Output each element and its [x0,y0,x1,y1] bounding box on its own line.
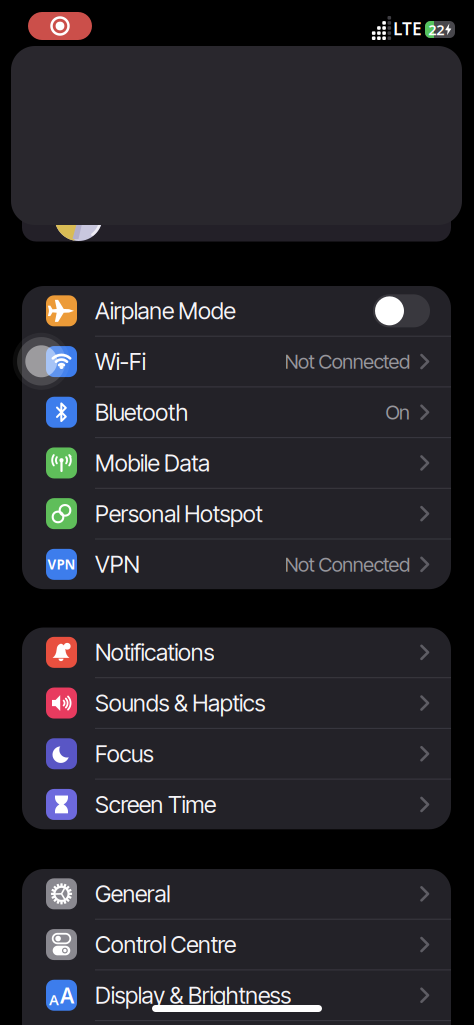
button[interactable]: Notifications [22,627,451,677]
staticText: Screen Time [95,790,216,818]
button[interactable]: Mobile Data [22,438,451,488]
staticText: A [49,990,59,1009]
staticText: General [95,880,170,908]
button[interactable]: Bluetooth [22,387,451,437]
button[interactable]: Airplane Mode [373,294,430,327]
staticText: 22 [428,20,444,39]
staticText: Personal Hotspot [95,499,262,528]
staticText: Not Connected [285,349,410,374]
staticText: LTE [393,17,422,40]
staticText: Wi-Fi [95,347,146,376]
button[interactable]: Focus [22,729,451,779]
button[interactable]: Sounds & Haptics [22,678,451,728]
staticText: A [60,981,74,1009]
button[interactable]: VPN [22,539,451,589]
button[interactable]: Stop screen recording [28,12,92,40]
staticText: Display & Brightness [95,981,291,1009]
button[interactable]: Personal Hotspot [22,489,451,538]
staticText: Focus [95,740,154,768]
button[interactable]: Wi-Fi [22,337,451,386]
staticText: Airplane Mode [95,297,235,325]
button[interactable]: Airplane Mode [22,286,451,336]
staticText: Mobile Data [95,449,210,477]
button[interactable]: A [22,970,451,1020]
staticText: Notifications [95,638,214,666]
staticText: Not Connected [285,552,410,576]
staticText: On [385,400,410,424]
staticText: VPN [95,550,139,578]
button[interactable]: Control Centre [22,920,451,969]
button[interactable]: General [22,869,451,919]
button[interactable]: Screen Time [22,780,451,829]
staticText: Control Centre [95,930,236,959]
staticText: VPN [47,555,75,573]
staticText: Bluetooth [95,398,189,426]
staticText: Sounds & Haptics [95,689,265,717]
